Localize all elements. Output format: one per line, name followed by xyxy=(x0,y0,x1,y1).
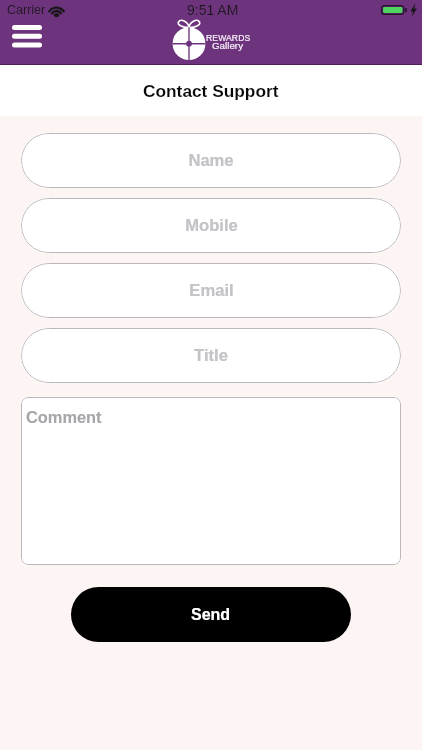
staticText: Gallery xyxy=(212,40,244,51)
button[interactable]: Mobile xyxy=(21,198,401,253)
staticText: Name xyxy=(188,151,234,170)
button[interactable]: Name xyxy=(21,133,401,188)
staticText: Title xyxy=(194,346,228,365)
staticText: Send xyxy=(191,606,231,624)
staticText: Email xyxy=(189,281,234,300)
staticText: 9:51 AM xyxy=(187,2,239,18)
staticText: Mobile xyxy=(185,216,238,235)
button[interactable]: Email xyxy=(21,263,401,318)
button[interactable]: Comment xyxy=(21,397,401,565)
button[interactable]: Send xyxy=(71,587,351,642)
button[interactable]: Title xyxy=(21,328,401,383)
staticText: Comment xyxy=(26,408,102,426)
staticText: Carrier xyxy=(7,3,46,17)
staticText: Contact Support xyxy=(143,81,279,100)
staticText: REWARDS xyxy=(206,33,251,43)
button[interactable]: Open navigation menu xyxy=(12,25,42,47)
